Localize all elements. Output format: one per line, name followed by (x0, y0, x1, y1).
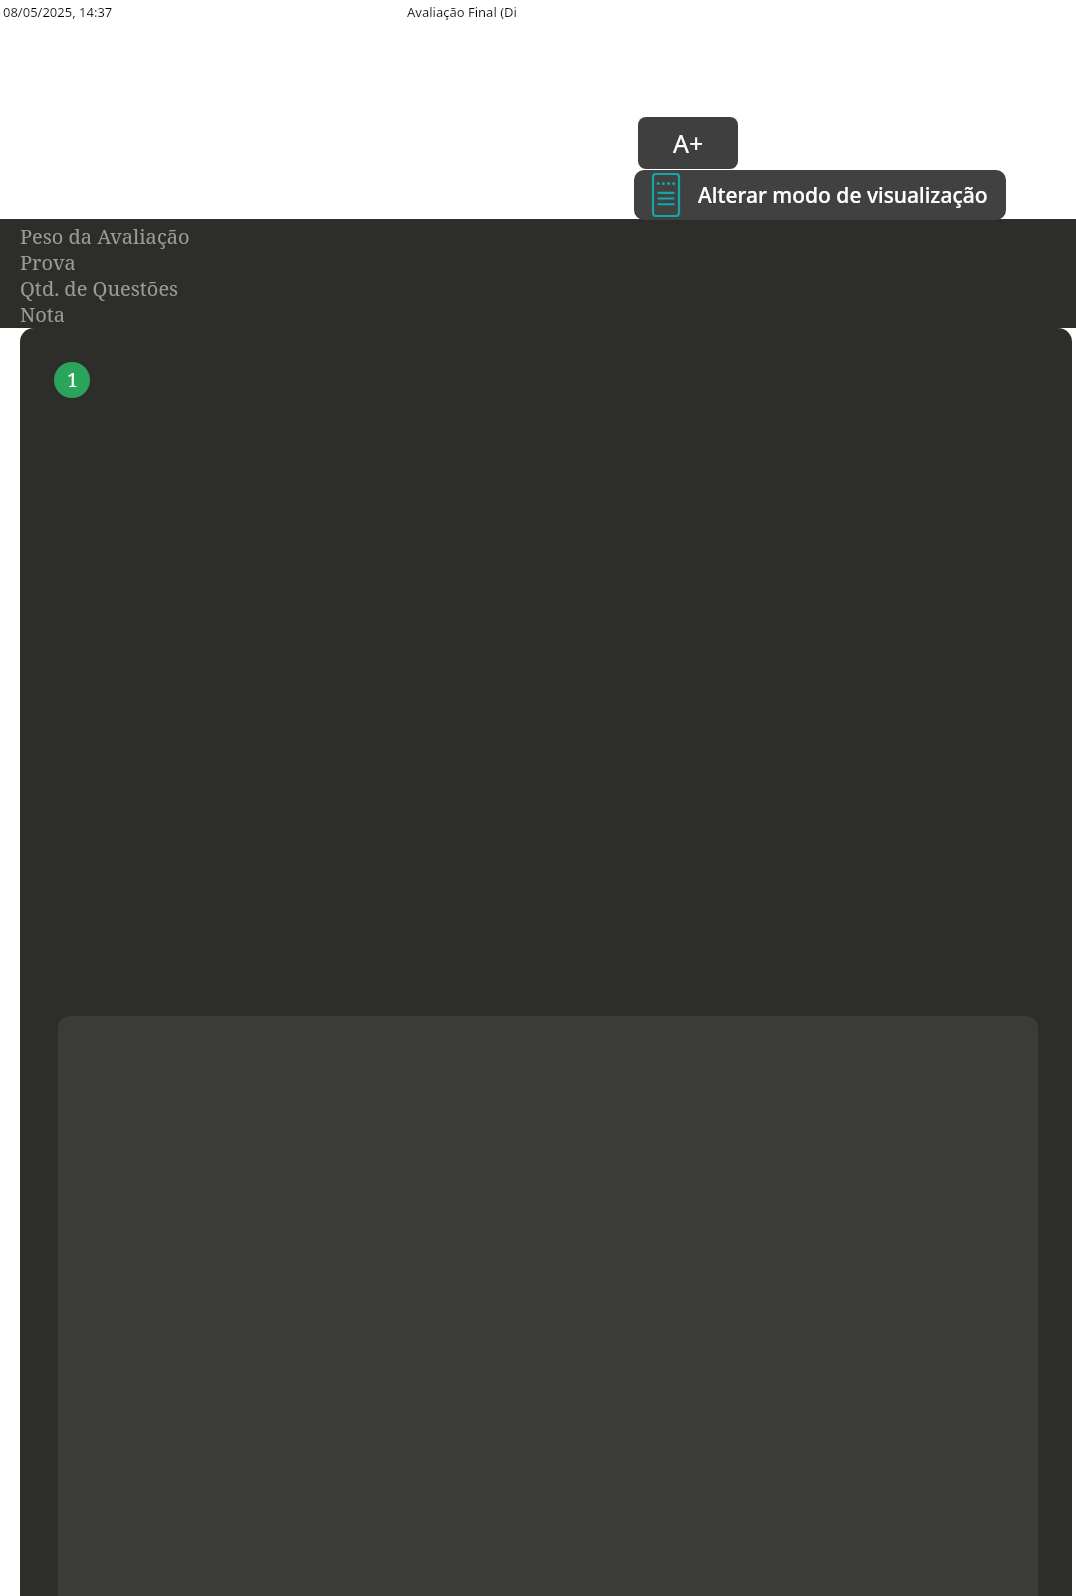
button[interactable]: 1 (20, 328, 1072, 1596)
staticText: A+ (673, 126, 704, 160)
staticText: Avaliação Final (Di (407, 3, 517, 21)
staticText: Prova (20, 249, 76, 275)
staticText: 08/05/2025, 14:37 (3, 3, 113, 21)
staticText: Alterar modo de visualização (698, 181, 988, 210)
staticText: Peso da Avaliação (20, 223, 190, 249)
button[interactable]: Aumentar fonte (638, 117, 738, 169)
staticText: Nota (20, 301, 66, 327)
button[interactable]: Alterar modo de visualização (634, 170, 1006, 220)
staticText: Qtd. de Questões (20, 275, 179, 301)
button[interactable]: 1 (54, 362, 90, 398)
staticText: 1 (67, 367, 78, 393)
